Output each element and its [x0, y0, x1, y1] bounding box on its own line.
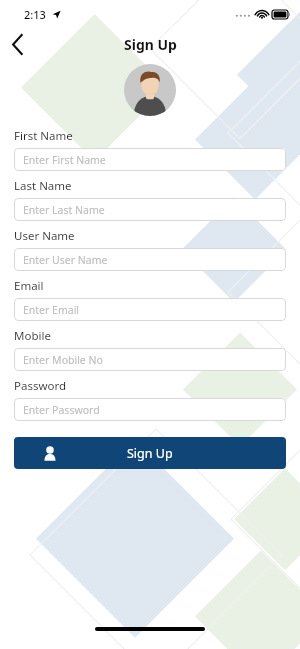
- button[interactable]: Enter Email: [14, 298, 286, 321]
- button[interactable]: Enter First Name: [14, 148, 286, 171]
- staticText: Last Name: [14, 178, 72, 194]
- staticText: First Name: [14, 128, 73, 144]
- button[interactable]: Sign Up: [14, 437, 286, 469]
- staticText: Email: [14, 278, 44, 294]
- staticText: 2:13: [24, 7, 46, 22]
- button[interactable]: Enter Password: [14, 398, 286, 421]
- staticText: Sign Up: [127, 445, 173, 462]
- staticText: Enter Email: [23, 303, 80, 317]
- button[interactable]: Enter User Name: [14, 248, 286, 271]
- staticText: Password: [14, 378, 67, 394]
- staticText: Mobile: [14, 328, 51, 344]
- staticText: Enter First Name: [23, 153, 106, 167]
- staticText: User Name: [14, 228, 75, 244]
- button[interactable]: Back: [0, 28, 34, 60]
- button[interactable]: Enter Mobile No: [14, 348, 286, 371]
- staticText: Enter Mobile No: [23, 353, 103, 367]
- staticText: Enter User Name: [23, 253, 108, 267]
- staticText: Sign Up: [124, 35, 177, 54]
- button[interactable]: Enter Last Name: [14, 198, 286, 221]
- staticText: Enter Password: [23, 403, 100, 417]
- staticText: Enter Last Name: [23, 203, 105, 217]
